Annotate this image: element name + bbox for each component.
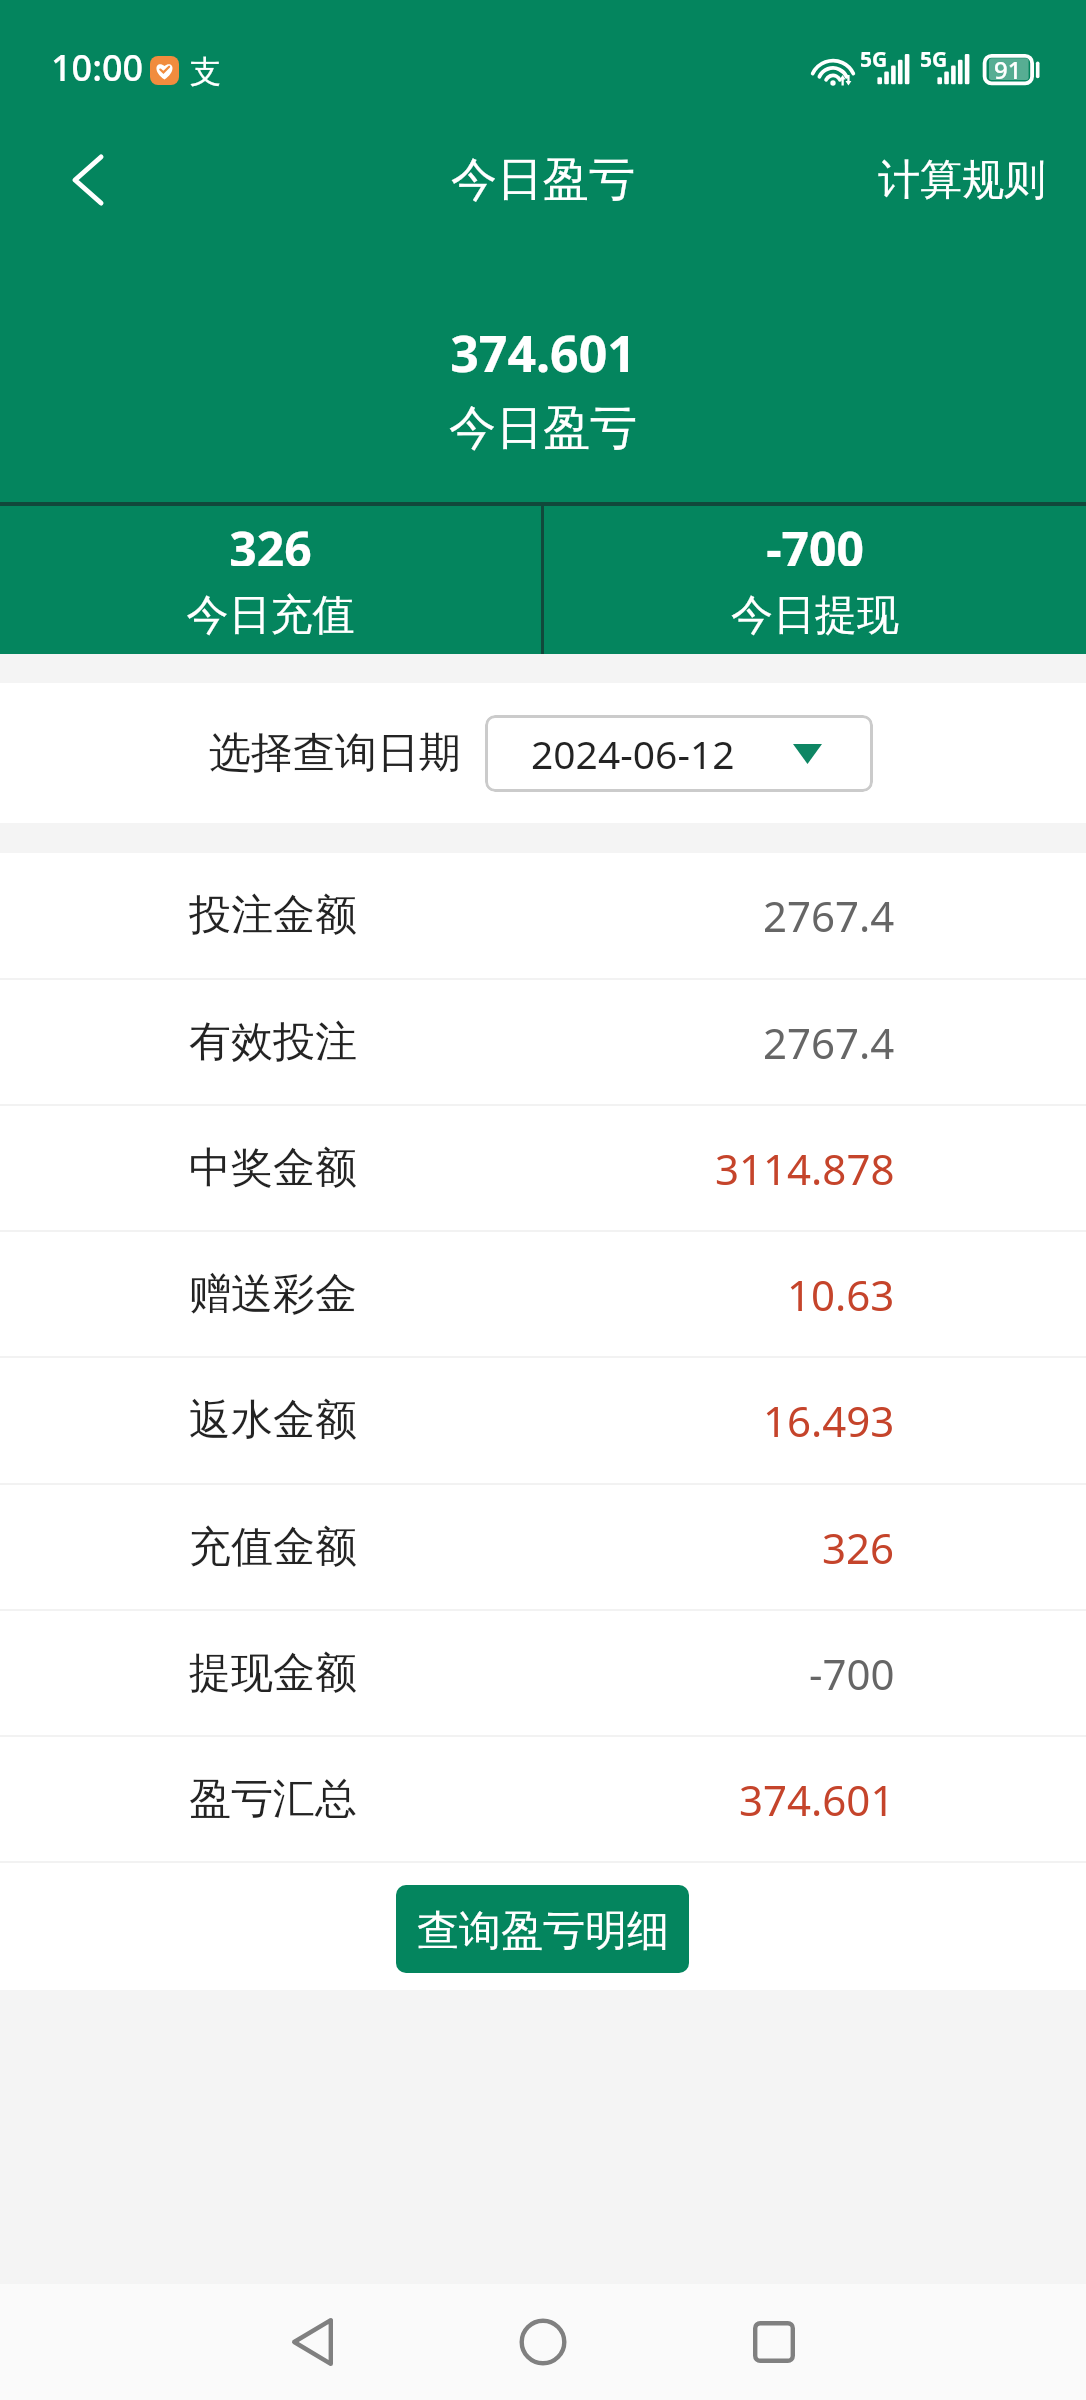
button[interactable]: 有效投注 <box>0 980 1086 1104</box>
button[interactable]: 充值金额 <box>0 1485 1086 1609</box>
staticText: 今日盈亏 <box>0 151 1086 209</box>
staticText: 盈亏汇总 <box>189 1773 357 1826</box>
staticText: 374.601 <box>0 319 1086 379</box>
staticText: 提现金额 <box>189 1647 357 1700</box>
button[interactable]: 赠送彩金 <box>0 1232 1086 1356</box>
button[interactable]: 盈亏汇总 <box>0 1737 1086 1861</box>
staticText: 计算规则 <box>878 154 1046 207</box>
button[interactable]: 投注金额 <box>0 853 1086 978</box>
staticText: 查询盈亏明细 <box>417 1905 669 1958</box>
staticText: 有效投注 <box>189 1016 357 1069</box>
staticText: 5G <box>860 45 888 74</box>
staticText: 支 <box>190 52 221 91</box>
staticText: 返水金额 <box>189 1394 357 1447</box>
staticText: 374.601 <box>739 1771 895 1828</box>
staticText: 中奖金额 <box>189 1142 357 1195</box>
button[interactable]: Back <box>232 2284 392 2400</box>
staticText: -700 <box>809 1645 895 1702</box>
button[interactable]: Home <box>463 2284 623 2400</box>
button[interactable]: 326 <box>0 506 541 654</box>
staticText: 充值金额 <box>189 1521 357 1574</box>
button[interactable]: 计算规则 <box>878 142 1046 218</box>
button[interactable]: 中奖金额 <box>0 1106 1086 1230</box>
staticText: 投注金额 <box>189 889 357 942</box>
button[interactable]: 返水金额 <box>0 1358 1086 1483</box>
staticText: 2767.4 <box>763 887 895 944</box>
staticText: 赠送彩金 <box>189 1268 357 1321</box>
staticText: 选择查询日期 <box>209 727 461 780</box>
button[interactable]: Recents <box>694 2284 854 2400</box>
staticText: 2024-06-12 <box>531 727 735 780</box>
button[interactable]: 提现金额 <box>0 1611 1086 1735</box>
button[interactable]: -700 <box>544 506 1086 654</box>
button[interactable]: Back <box>48 140 128 220</box>
button[interactable]: 查询盈亏明细 <box>396 1885 689 1973</box>
staticText: 今日充值 <box>0 589 541 642</box>
staticText: 91 <box>994 53 1022 86</box>
staticText: 2767.4 <box>763 1014 895 1071</box>
staticText: 16.493 <box>763 1392 895 1449</box>
staticText: 10.63 <box>787 1266 895 1323</box>
staticText: 10:00 <box>51 43 144 92</box>
staticText: 326 <box>822 1519 895 1576</box>
staticText: 3114.878 <box>715 1140 895 1197</box>
staticText: -700 <box>544 516 1086 566</box>
staticText: 今日提现 <box>544 589 1086 642</box>
staticText: 326 <box>0 516 541 566</box>
staticText: 5G <box>920 45 948 74</box>
staticText: 今日盈亏 <box>0 399 1086 458</box>
button[interactable]: 2024-06-12 <box>485 715 873 792</box>
